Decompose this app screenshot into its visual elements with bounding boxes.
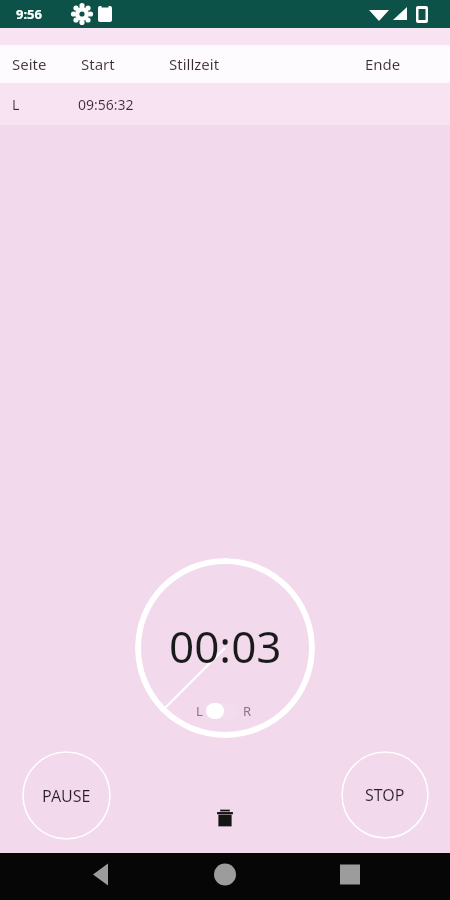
- staticText: STOP: [365, 784, 405, 806]
- button[interactable]: Home: [170, 853, 280, 900]
- staticText: PAUSE: [42, 785, 91, 807]
- button[interactable]: Delete: [205, 798, 245, 838]
- staticText: Start: [81, 54, 115, 74]
- staticText: R: [243, 702, 252, 720]
- staticText: 00:03: [169, 616, 282, 676]
- staticText: 9:56: [16, 5, 42, 23]
- button[interactable]: 00:03: [135, 558, 315, 738]
- button[interactable]: STOP: [341, 751, 429, 839]
- staticText: 09:56:32: [78, 95, 134, 114]
- staticText: Stillzeit: [169, 54, 220, 74]
- staticText: Seite: [12, 54, 47, 74]
- button[interactable]: L: [196, 700, 252, 722]
- button[interactable]: L: [0, 83, 450, 125]
- staticText: Ende: [365, 54, 401, 74]
- staticText: L: [196, 702, 203, 720]
- staticText: L: [12, 95, 20, 114]
- button[interactable]: PAUSE: [22, 751, 111, 840]
- button[interactable]: Back: [45, 853, 155, 900]
- button[interactable]: Recents: [295, 853, 405, 900]
